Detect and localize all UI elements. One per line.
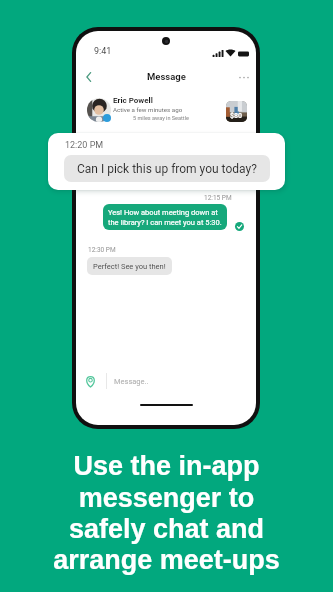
button[interactable]: More options bbox=[235, 68, 253, 86]
staticText: Yes! How about meeting down at the libra… bbox=[108, 208, 222, 227]
staticText: 12:30 PM bbox=[88, 246, 116, 254]
staticText: Message.. bbox=[114, 377, 149, 386]
staticText: 12:20 PM bbox=[65, 140, 104, 151]
button[interactable]: 12:20 PM bbox=[48, 133, 285, 190]
staticText: 5 miles away in Seattle bbox=[133, 115, 189, 121]
staticText: Perfect! See you then! bbox=[93, 262, 166, 271]
staticText: Can I pick this up from you today? bbox=[77, 162, 257, 176]
button[interactable]: Listing photo bbox=[226, 101, 247, 122]
button[interactable]: Back bbox=[78, 67, 98, 87]
staticText: Use the in-app messenger to safely chat … bbox=[0, 451, 333, 575]
staticText: Active a few minutes ago bbox=[113, 106, 183, 113]
staticText: Message bbox=[147, 71, 186, 82]
staticText: $80 bbox=[230, 112, 243, 120]
staticText: Eric Powell bbox=[113, 96, 153, 105]
staticText: 12:15 PM bbox=[204, 194, 232, 202]
button[interactable]: Send location bbox=[84, 375, 97, 388]
staticText: 9:41 bbox=[94, 46, 112, 57]
